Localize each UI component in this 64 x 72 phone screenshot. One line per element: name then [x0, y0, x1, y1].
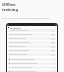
button[interactable] — [8, 41, 56, 44]
button[interactable] — [8, 53, 56, 56]
staticText: My workouts — [10, 27, 21, 29]
button[interactable] — [8, 33, 56, 36]
button[interactable]: Toggle item — [8, 66, 56, 69]
button[interactable] — [8, 37, 56, 40]
staticText: Offline — [2, 2, 16, 7]
staticText: training — [2, 7, 18, 12]
button[interactable] — [8, 49, 56, 52]
staticText: Work out anywhere with downloaded sessio… — [2, 17, 50, 20]
button[interactable]: Toggle item — [8, 58, 56, 61]
button[interactable]: Toggle item — [8, 62, 56, 65]
button[interactable]: Toggle item — [8, 70, 56, 72]
button[interactable] — [8, 45, 56, 48]
button[interactable] — [8, 29, 56, 32]
button[interactable]: Menu — [7, 26, 57, 29]
